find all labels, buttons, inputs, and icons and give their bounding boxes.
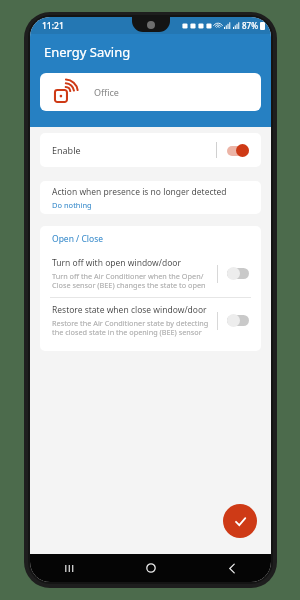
button[interactable]: Toggle bbox=[227, 267, 249, 280]
staticText: Open / Close bbox=[52, 233, 104, 245]
button[interactable]: Back bbox=[221, 557, 243, 579]
staticText: 87% bbox=[242, 20, 258, 31]
button[interactable]: Office bbox=[40, 73, 261, 111]
staticText: Energy Saving bbox=[44, 43, 131, 61]
staticText: Action when presence is no longer detect… bbox=[52, 186, 227, 198]
staticText: Restore the Air Conditioner state by det… bbox=[52, 318, 209, 337]
staticText: Turn off with open window/door bbox=[52, 257, 181, 269]
staticText: Do nothing bbox=[52, 200, 92, 210]
staticText: 11:21 bbox=[42, 20, 64, 32]
staticText: Office bbox=[94, 86, 119, 98]
button[interactable]: Restore state when close window/door bbox=[40, 298, 261, 344]
button[interactable]: Toggle bbox=[227, 314, 249, 327]
button[interactable]: Home bbox=[140, 557, 162, 579]
button[interactable]: Action when presence is no longer detect… bbox=[40, 181, 261, 214]
staticText: Enable bbox=[52, 144, 81, 156]
staticText: Restore state when close window/door bbox=[52, 304, 207, 316]
button[interactable]: Recent apps bbox=[58, 557, 80, 579]
button[interactable]: Enable bbox=[40, 133, 261, 167]
staticText: Turn off the Air Conditioner when the Op… bbox=[52, 271, 206, 290]
button[interactable]: Enable toggle bbox=[227, 144, 249, 157]
button[interactable]: Confirm bbox=[223, 504, 257, 538]
button[interactable]: Turn off with open window/door bbox=[40, 251, 261, 297]
